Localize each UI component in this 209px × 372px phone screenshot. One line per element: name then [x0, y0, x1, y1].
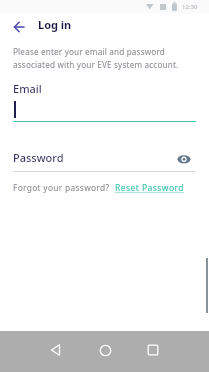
staticText: Email: [13, 81, 42, 96]
staticText: associated with your EVE system account.: [13, 59, 179, 70]
staticText: Forgot your password?: [13, 182, 110, 193]
button[interactable]: [147, 344, 159, 356]
staticText: Password: [13, 150, 64, 165]
button[interactable]: [50, 344, 62, 356]
button[interactable]: [176, 153, 192, 165]
staticText: Log in: [38, 17, 72, 32]
staticText: 12:30: [182, 3, 198, 11]
staticText: Please enter your email and password: [13, 46, 165, 57]
button[interactable]: [13, 21, 25, 33]
button[interactable]: [99, 344, 112, 357]
button[interactable]: Reset Password: [115, 182, 184, 194]
